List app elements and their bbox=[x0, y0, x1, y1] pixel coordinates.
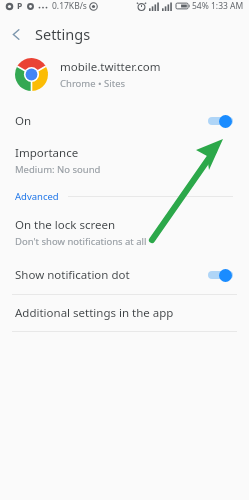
staticText: Don't show notifications at all bbox=[15, 235, 147, 248]
staticText: mobile.twitter.com bbox=[60, 59, 161, 75]
button[interactable]: Additional settings in the app bbox=[0, 295, 249, 331]
staticText: Additional settings in the app bbox=[15, 305, 174, 321]
button[interactable]: Back bbox=[0, 18, 32, 50]
staticText: P bbox=[17, 0, 23, 12]
staticText: Importance bbox=[15, 145, 79, 161]
staticText: Show notification dot bbox=[15, 267, 130, 283]
staticText: 0.17KB/s bbox=[52, 0, 87, 12]
staticText: 54% bbox=[192, 0, 209, 12]
button[interactable]: Show notification dot bbox=[0, 256, 249, 294]
staticText: Chrome • Sites bbox=[60, 77, 126, 90]
button[interactable]: Importance bbox=[0, 138, 249, 183]
staticText: On bbox=[15, 113, 32, 129]
staticText: Medium: No sound bbox=[15, 163, 101, 176]
button[interactable]: On the lock screen bbox=[0, 209, 249, 256]
staticText: 1:33 AM bbox=[211, 0, 244, 12]
staticText: Advanced bbox=[15, 190, 59, 203]
button[interactable]: On bbox=[0, 104, 249, 138]
staticText: On the lock screen bbox=[15, 217, 116, 233]
button[interactable]: Advanced bbox=[0, 183, 249, 209]
button[interactable]: mobile.twitter.com bbox=[0, 50, 249, 98]
staticText: Settings bbox=[35, 24, 91, 44]
